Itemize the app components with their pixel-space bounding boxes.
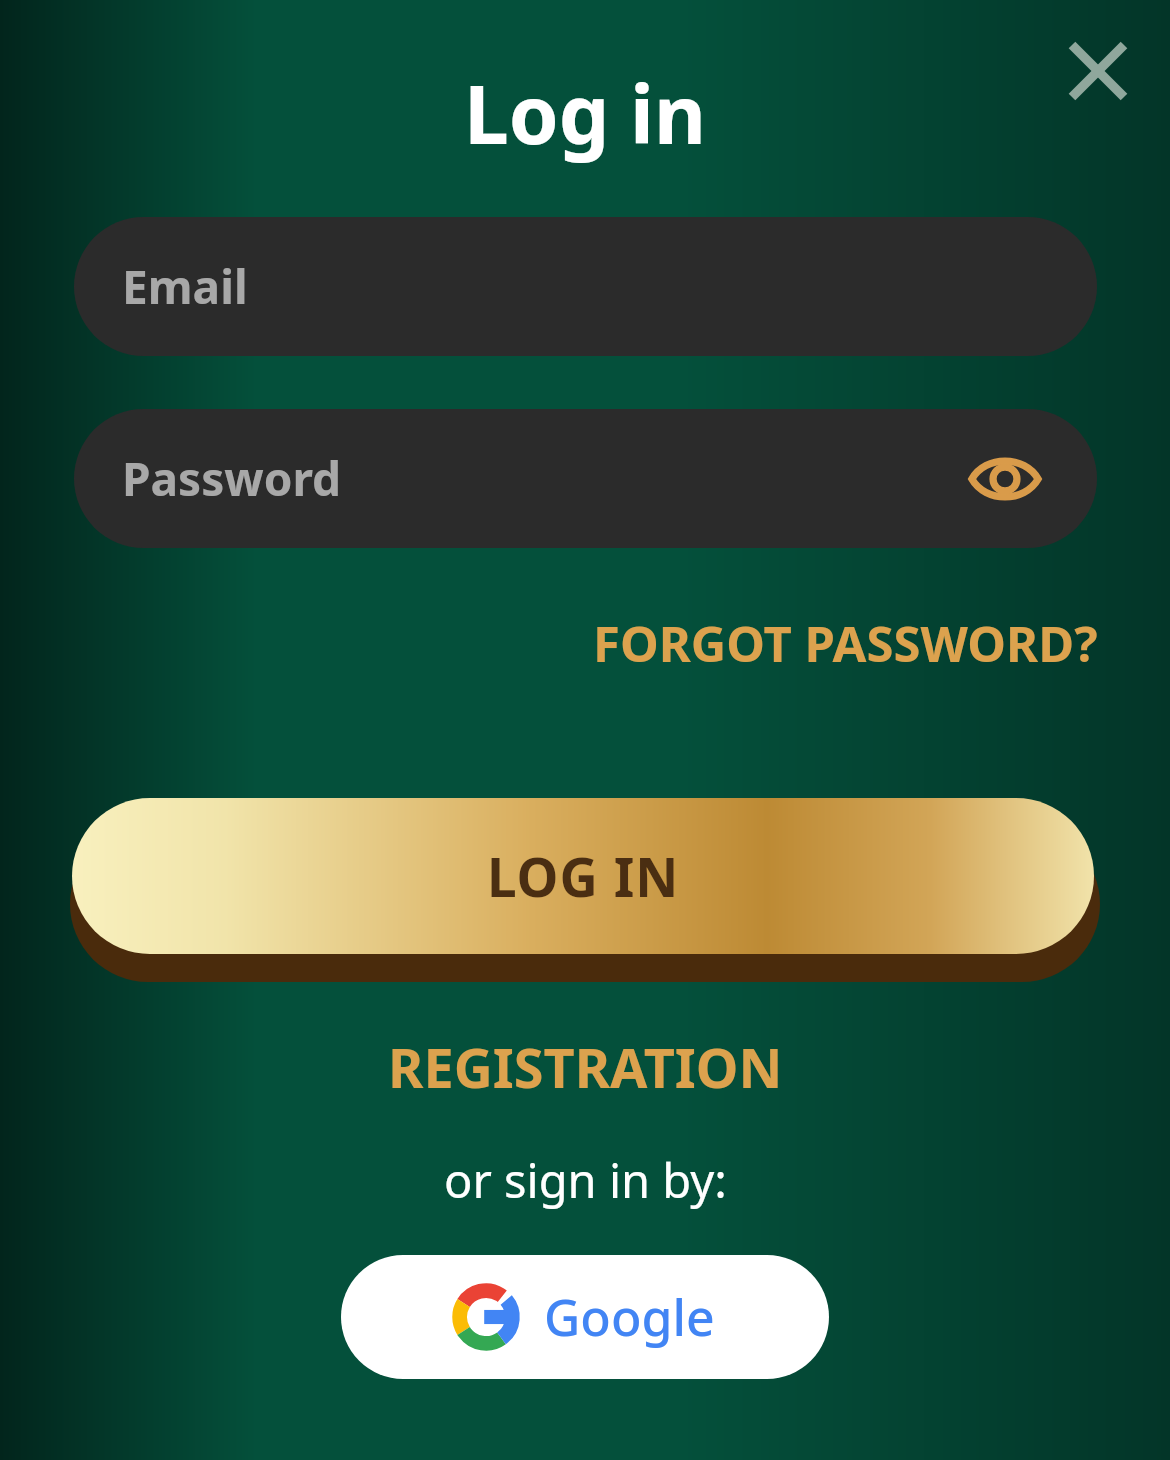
button[interactable]: Password — [74, 409, 1097, 548]
button[interactable]: REGISTRATION — [374, 1022, 797, 1112]
staticText: FORGOT PASSWORD? — [593, 610, 1098, 677]
staticText: Google — [544, 1283, 715, 1351]
staticText: Email — [122, 255, 248, 318]
staticText: LOG IN — [487, 840, 680, 912]
button[interactable]: Close — [1048, 21, 1148, 121]
button[interactable]: Google — [341, 1255, 829, 1379]
button[interactable]: Email — [74, 217, 1097, 356]
button[interactable]: LOG IN — [70, 798, 1100, 984]
button[interactable]: FORGOT PASSWORD? — [587, 604, 1104, 683]
staticText: or sign in by: — [444, 1148, 727, 1212]
staticText: REGISTRATION — [388, 1030, 783, 1104]
staticText: Password — [122, 447, 342, 510]
staticText: Log in — [464, 58, 706, 167]
button[interactable]: Show password — [961, 435, 1049, 523]
